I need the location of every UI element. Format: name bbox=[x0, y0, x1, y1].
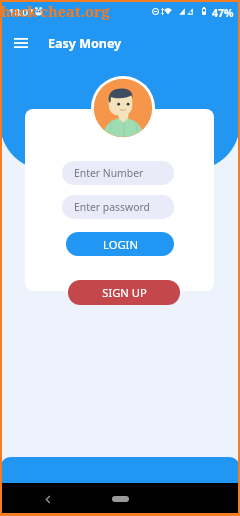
staticText: Enter Number bbox=[74, 166, 144, 180]
staticText: 47% bbox=[212, 6, 234, 20]
staticText: Enter password bbox=[74, 200, 150, 214]
button[interactable]: Open navigation menu bbox=[9, 32, 32, 55]
button[interactable]: Back bbox=[38, 490, 57, 509]
staticText: 18:07 bbox=[9, 6, 34, 19]
staticText: SIGN UP bbox=[102, 285, 147, 300]
button[interactable]: Home bbox=[112, 496, 129, 502]
staticText: LOGIN bbox=[103, 237, 138, 252]
staticText: Easy Money bbox=[48, 35, 122, 52]
button[interactable]: SIGN UP bbox=[68, 280, 180, 305]
button[interactable]: Enter password bbox=[62, 195, 174, 219]
button[interactable]: LOGIN bbox=[66, 232, 174, 256]
staticText: hack cheat.org bbox=[1, 1, 110, 21]
button[interactable]: Enter Number bbox=[62, 161, 174, 185]
